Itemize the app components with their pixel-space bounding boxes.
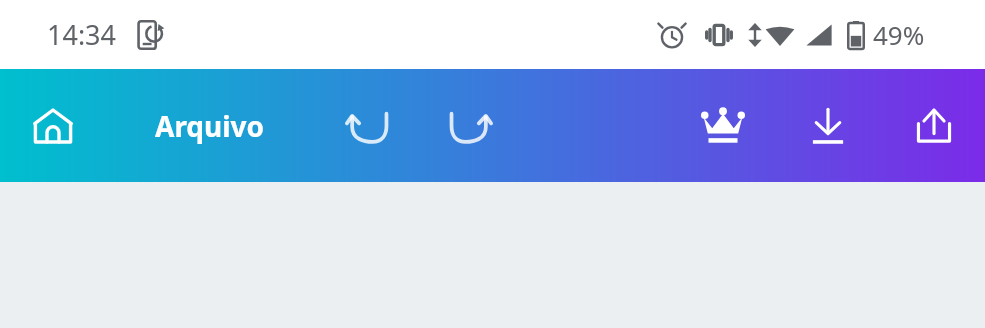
button[interactable]: Arquivo [155,107,265,145]
button[interactable]: Home [20,93,86,159]
staticText: Arquivo [155,107,265,145]
button[interactable]: Premium [690,93,756,159]
button[interactable]: Undo [335,93,401,159]
button[interactable]: Download [795,93,861,159]
staticText: 49% [873,17,925,52]
button[interactable]: Share [901,93,967,159]
button[interactable]: Redo [437,93,503,159]
staticText: 14:34 [47,16,117,53]
